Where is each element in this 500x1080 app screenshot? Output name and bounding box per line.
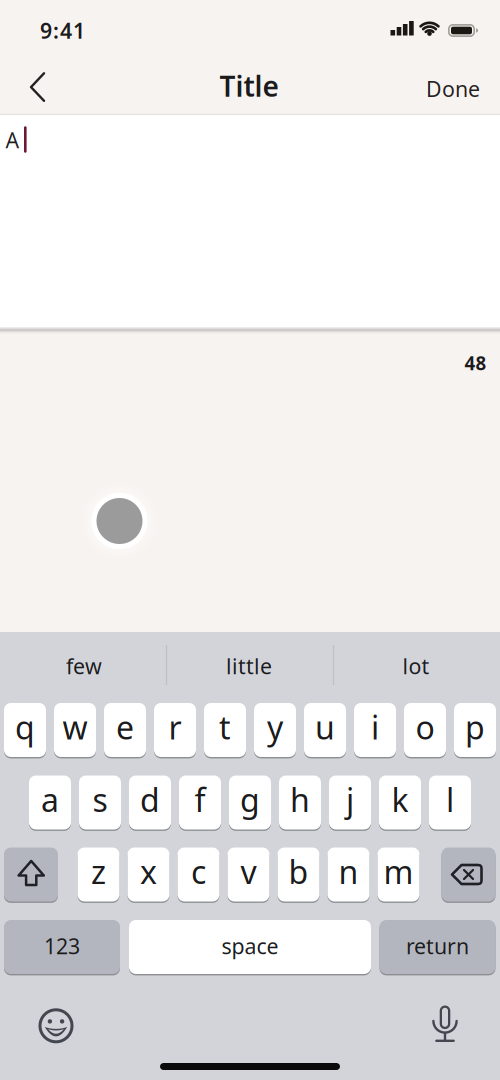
staticText: w: [62, 706, 87, 748]
button[interactable]: i: [354, 703, 396, 757]
button[interactable]: c: [177, 847, 219, 901]
button[interactable]: m: [377, 847, 419, 901]
staticText: j: [346, 778, 354, 821]
button[interactable]: little: [169, 644, 329, 688]
staticText: u: [315, 706, 335, 748]
button[interactable]: space: [129, 920, 371, 974]
staticText: a: [41, 778, 59, 821]
staticText: e: [116, 706, 134, 748]
button[interactable]: Emoji: [34, 1004, 78, 1048]
button[interactable]: k: [379, 775, 421, 829]
button[interactable]: u: [304, 703, 346, 757]
staticText: b: [288, 850, 308, 893]
button[interactable]: Delete: [441, 847, 495, 901]
button[interactable]: f: [179, 775, 221, 829]
staticText: lot: [402, 652, 429, 680]
staticText: space: [221, 932, 278, 960]
staticText: p: [465, 706, 485, 748]
button[interactable]: r: [154, 703, 196, 757]
button[interactable]: d: [129, 775, 171, 829]
staticText: 123: [44, 932, 80, 960]
button[interactable]: a: [29, 775, 71, 829]
staticText: g: [240, 778, 260, 821]
button[interactable]: n: [327, 847, 369, 901]
button[interactable]: Done: [426, 75, 480, 103]
button[interactable]: Back: [15, 65, 59, 109]
staticText: 48: [464, 351, 486, 375]
staticText: v: [240, 850, 256, 893]
button[interactable]: Dictation: [423, 1007, 467, 1051]
button[interactable]: y: [254, 703, 296, 757]
button[interactable]: p: [454, 703, 496, 757]
button[interactable]: b: [277, 847, 319, 901]
staticText: A: [5, 126, 19, 154]
button[interactable]: t: [204, 703, 246, 757]
button[interactable]: j: [329, 775, 371, 829]
staticText: f: [194, 778, 205, 821]
staticText: Title: [219, 67, 278, 105]
button[interactable]: Shift: [4, 847, 58, 901]
staticText: return: [406, 932, 469, 960]
button[interactable]: z: [77, 847, 119, 901]
button[interactable]: v: [227, 847, 269, 901]
staticText: k: [391, 778, 408, 821]
staticText: r: [168, 706, 181, 748]
button[interactable]: lot: [336, 644, 496, 688]
button[interactable]: s: [79, 775, 121, 829]
button[interactable]: o: [404, 703, 446, 757]
staticText: few: [66, 652, 102, 680]
button[interactable]: q: [4, 703, 46, 757]
button[interactable]: h: [279, 775, 321, 829]
staticText: s: [92, 778, 107, 821]
staticText: q: [15, 706, 35, 748]
staticText: i: [371, 706, 379, 748]
staticText: o: [415, 706, 434, 748]
button[interactable]: g: [229, 775, 271, 829]
button[interactable]: e: [104, 703, 146, 757]
staticText: z: [91, 850, 106, 893]
button[interactable]: x: [127, 847, 169, 901]
staticText: m: [383, 850, 413, 893]
staticText: l: [446, 778, 454, 821]
staticText: y: [267, 706, 283, 748]
staticText: c: [191, 850, 206, 893]
button[interactable]: l: [429, 775, 471, 829]
staticText: little: [226, 652, 272, 680]
staticText: x: [140, 850, 157, 893]
button[interactable]: 123: [4, 920, 120, 974]
staticText: n: [338, 850, 358, 893]
button[interactable]: return: [379, 920, 495, 974]
button[interactable]: few: [4, 644, 164, 688]
staticText: 9:41: [40, 16, 85, 45]
staticText: Done: [426, 75, 480, 103]
staticText: d: [140, 778, 160, 821]
staticText: h: [290, 778, 310, 821]
staticText: t: [219, 706, 231, 748]
button[interactable]: w: [54, 703, 96, 757]
